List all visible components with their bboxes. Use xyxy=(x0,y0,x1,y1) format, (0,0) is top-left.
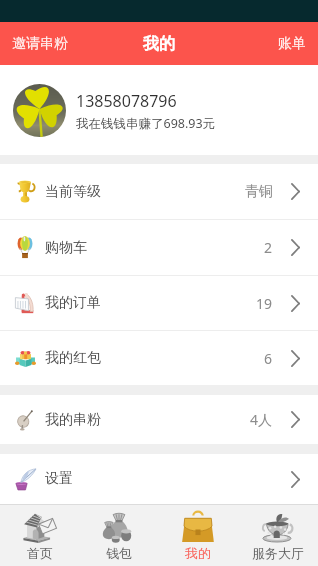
staticText: 邀请串粉 xyxy=(12,35,68,53)
staticText: 首页 xyxy=(27,545,53,561)
staticText: 4人 xyxy=(250,410,273,429)
button[interactable]: 我的串粉 xyxy=(0,395,318,444)
staticText: 钱包 xyxy=(106,545,132,561)
staticText: 青铜 xyxy=(245,183,273,201)
button[interactable]: 钱包 xyxy=(79,505,158,566)
staticText: 我的订单 xyxy=(45,294,101,312)
staticText: 账单 xyxy=(278,35,306,53)
staticText: 19 xyxy=(256,294,273,313)
button[interactable]: 我的红包 xyxy=(0,331,318,385)
button[interactable]: 设置 xyxy=(0,454,318,504)
button[interactable]: 服务大厅 xyxy=(238,505,318,566)
button[interactable]: 我的 xyxy=(158,505,238,566)
staticText: 6 xyxy=(264,349,273,368)
staticText: 我的串粉 xyxy=(45,411,101,429)
staticText: 2 xyxy=(264,238,273,257)
staticText: 服务大厅 xyxy=(252,545,304,561)
button[interactable]: 当前等级 xyxy=(0,164,318,219)
button[interactable]: 账单 xyxy=(228,22,318,65)
staticText: 当前等级 xyxy=(45,183,101,201)
staticText: 我在钱钱串赚了698.93元 xyxy=(76,115,216,132)
button[interactable]: 我的订单 xyxy=(0,276,318,330)
staticText: 设置 xyxy=(45,470,73,488)
staticText: 13858078796 xyxy=(76,90,177,112)
button[interactable]: 邀请串粉 xyxy=(0,22,100,65)
button[interactable]: 首页 xyxy=(0,505,79,566)
button[interactable]: 13858078796 xyxy=(0,65,318,155)
staticText: 我的 xyxy=(143,34,175,54)
button[interactable]: 购物车 xyxy=(0,220,318,275)
staticText: 购物车 xyxy=(45,239,87,257)
staticText: 我的 xyxy=(185,545,211,561)
staticText: 我的红包 xyxy=(45,349,101,367)
